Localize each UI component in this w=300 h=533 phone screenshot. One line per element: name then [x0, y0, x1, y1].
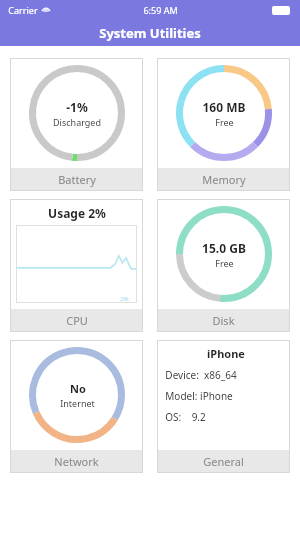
- staticText: OS: 9.2: [165, 410, 206, 424]
- staticText: System Utilities: [99, 24, 201, 42]
- button[interactable]: -1%: [10, 58, 143, 191]
- staticText: CPU: [66, 313, 88, 328]
- button[interactable]: iPhone: [157, 340, 290, 473]
- staticText: -1%: [66, 99, 88, 115]
- button[interactable]: 15.0 GB: [157, 199, 290, 332]
- staticText: Internet: [60, 397, 95, 409]
- staticText: Device: x86_64: [165, 368, 237, 382]
- staticText: Model: iPhone: [165, 389, 233, 403]
- staticText: Free: [215, 116, 234, 128]
- staticText: Network: [54, 454, 99, 469]
- staticText: 15.0 GB: [202, 240, 246, 256]
- staticText: Disk: [212, 313, 235, 328]
- staticText: Usage 2%: [48, 205, 106, 221]
- button[interactable]: No: [10, 340, 143, 473]
- staticText: Battery: [58, 172, 96, 187]
- button[interactable]: 160 MB: [157, 58, 290, 191]
- staticText: No: [70, 381, 86, 396]
- staticText: 2%: [120, 295, 129, 303]
- staticText: iPhone: [207, 346, 245, 361]
- staticText: Discharged: [53, 116, 101, 128]
- staticText: 6:59 AM: [143, 4, 178, 16]
- staticText: Memory: [202, 172, 246, 187]
- staticText: Free: [215, 257, 234, 269]
- staticText: 160 MB: [202, 99, 246, 115]
- button[interactable]: Usage 2%: [10, 199, 143, 332]
- staticText: General: [203, 454, 244, 469]
- staticText: Carrier: [8, 4, 38, 16]
